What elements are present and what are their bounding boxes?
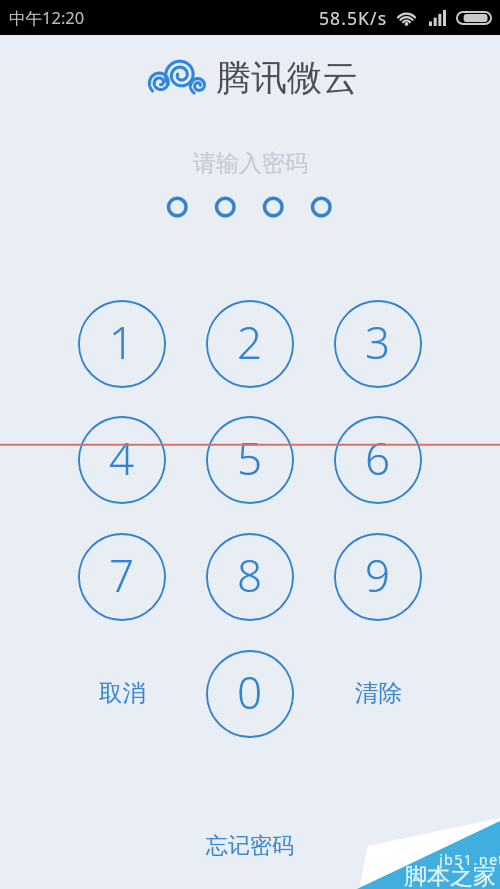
button[interactable]: Digit 2 [206, 300, 294, 388]
staticText: 9 [365, 545, 391, 605]
staticText: 4 [109, 428, 135, 488]
button[interactable]: Digit 7 [78, 533, 166, 621]
button[interactable]: 取消 [78, 667, 166, 719]
button[interactable]: Digit 5 [206, 416, 294, 504]
staticText: 3 [365, 312, 391, 372]
staticText: 取消 [99, 678, 146, 708]
staticText: 腾讯微云 [216, 56, 358, 101]
button[interactable]: Digit 9 [334, 533, 422, 621]
button[interactable]: Digit 4 [78, 416, 166, 504]
staticText: 请输入密码 [193, 149, 308, 178]
button[interactable]: Digit 8 [206, 533, 294, 621]
button[interactable]: 忘记密码 [206, 832, 294, 860]
button[interactable]: Digit 6 [334, 416, 422, 504]
staticText: 2 [237, 312, 263, 372]
staticText: 脚本之家 [404, 862, 496, 889]
staticText: 6 [365, 428, 391, 488]
staticText: 58.5K/s [319, 6, 388, 30]
staticText: 0 [237, 662, 263, 722]
button[interactable]: Digit 0 [206, 650, 294, 738]
staticText: jb51.net [439, 849, 500, 869]
staticText: 清除 [355, 678, 402, 708]
button[interactable]: 清除 [334, 667, 422, 719]
staticText: 7 [109, 545, 135, 605]
staticText: 1 [109, 312, 135, 372]
staticText: 忘记密码 [206, 832, 294, 860]
staticText: 5 [237, 428, 263, 488]
button[interactable]: Digit 1 [78, 300, 166, 388]
button[interactable]: Digit 3 [334, 300, 422, 388]
staticText: 中午12:20 [9, 6, 85, 29]
staticText: 8 [237, 545, 263, 605]
